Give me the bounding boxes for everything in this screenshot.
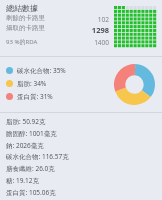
staticText: 膳食纖維: 26.0克 xyxy=(6,164,55,173)
staticText: 102 xyxy=(79,15,109,24)
staticText: 脂肪: 34% xyxy=(17,79,47,88)
staticText: 膽固醇: 1001毫克 xyxy=(6,129,57,138)
staticText: 蛋白質: 105.06克 xyxy=(6,188,56,197)
staticText: 1400 xyxy=(79,38,109,47)
staticText: 93 %的RDA xyxy=(6,38,38,46)
staticText: 碳水化合物: 116.57克 xyxy=(6,152,69,161)
staticText: 總結數據 xyxy=(6,3,38,13)
staticText: 碳水化合物: 35% xyxy=(17,66,66,75)
staticText: 鈉: 2026毫克 xyxy=(6,141,44,150)
staticText: 糖: 19.12克 xyxy=(6,176,40,185)
staticText: 剩餘的卡路里 xyxy=(6,14,45,22)
staticText: 脂肪: 50.92克 xyxy=(6,117,46,126)
staticText: 蛋白質: 31% xyxy=(17,92,53,101)
staticText: 1298 xyxy=(79,25,109,35)
staticText: 攝取的卡路里 xyxy=(6,24,45,32)
